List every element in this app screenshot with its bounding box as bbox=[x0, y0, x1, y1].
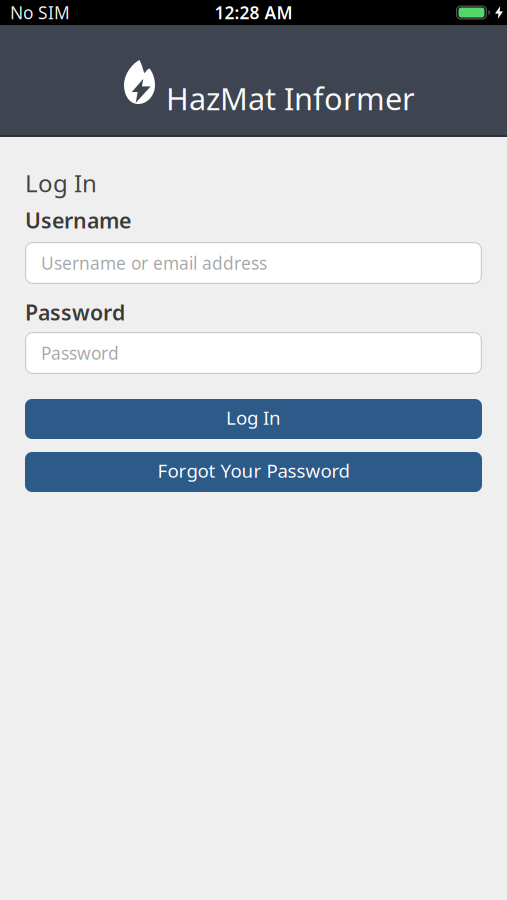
staticText: Password bbox=[41, 341, 119, 364]
staticText: Password bbox=[41, 341, 119, 364]
staticText: Password bbox=[25, 298, 125, 326]
staticText: 12:28 AM bbox=[214, 1, 292, 24]
staticText: HazMat Informer bbox=[166, 78, 415, 119]
secureTextField[interactable]: Password bbox=[41, 341, 482, 364]
button[interactable]: Log In bbox=[25, 399, 482, 439]
staticText: Username bbox=[25, 206, 131, 234]
staticText: Forgot Your Password bbox=[157, 458, 349, 483]
staticText: No SIM bbox=[10, 1, 70, 24]
textField[interactable]: Username or email address bbox=[41, 251, 482, 274]
staticText: Log In bbox=[226, 405, 281, 430]
button[interactable]: Forgot Your Password bbox=[25, 452, 482, 492]
staticText: Log In bbox=[25, 167, 97, 199]
staticText: Username or email address bbox=[41, 251, 267, 274]
staticText: Username or email address bbox=[41, 251, 267, 274]
